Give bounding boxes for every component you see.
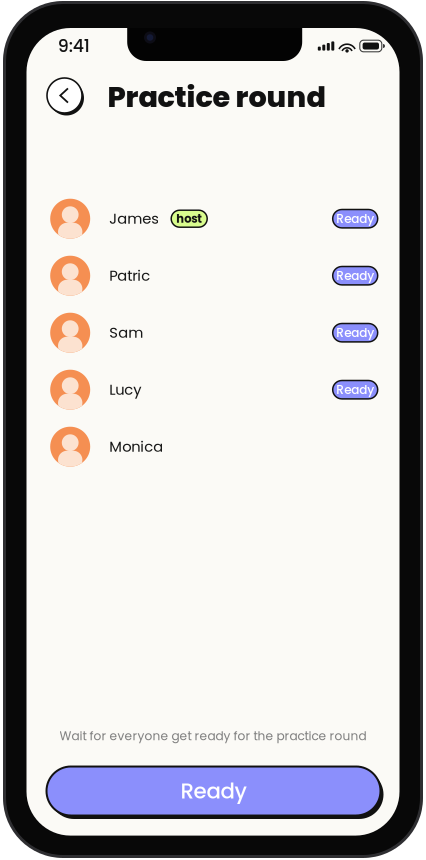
staticText: Monica <box>109 436 163 457</box>
staticText: Sam <box>109 322 143 343</box>
staticText: Wait for everyone get ready for the prac… <box>59 727 366 744</box>
staticText: 9:41 <box>58 34 90 58</box>
staticText: James <box>109 208 159 229</box>
staticText: Ready <box>180 776 246 806</box>
staticText: Patric <box>109 265 150 286</box>
staticText: Ready <box>336 381 374 398</box>
staticText: Ready <box>336 210 374 227</box>
staticText: host <box>176 211 202 227</box>
staticText: Practice round <box>107 77 325 117</box>
staticText: Lucy <box>109 379 141 400</box>
button[interactable]: Back <box>45 76 84 115</box>
staticText: Ready <box>336 267 374 284</box>
button[interactable]: Ready <box>44 764 382 817</box>
staticText: Ready <box>336 324 374 341</box>
